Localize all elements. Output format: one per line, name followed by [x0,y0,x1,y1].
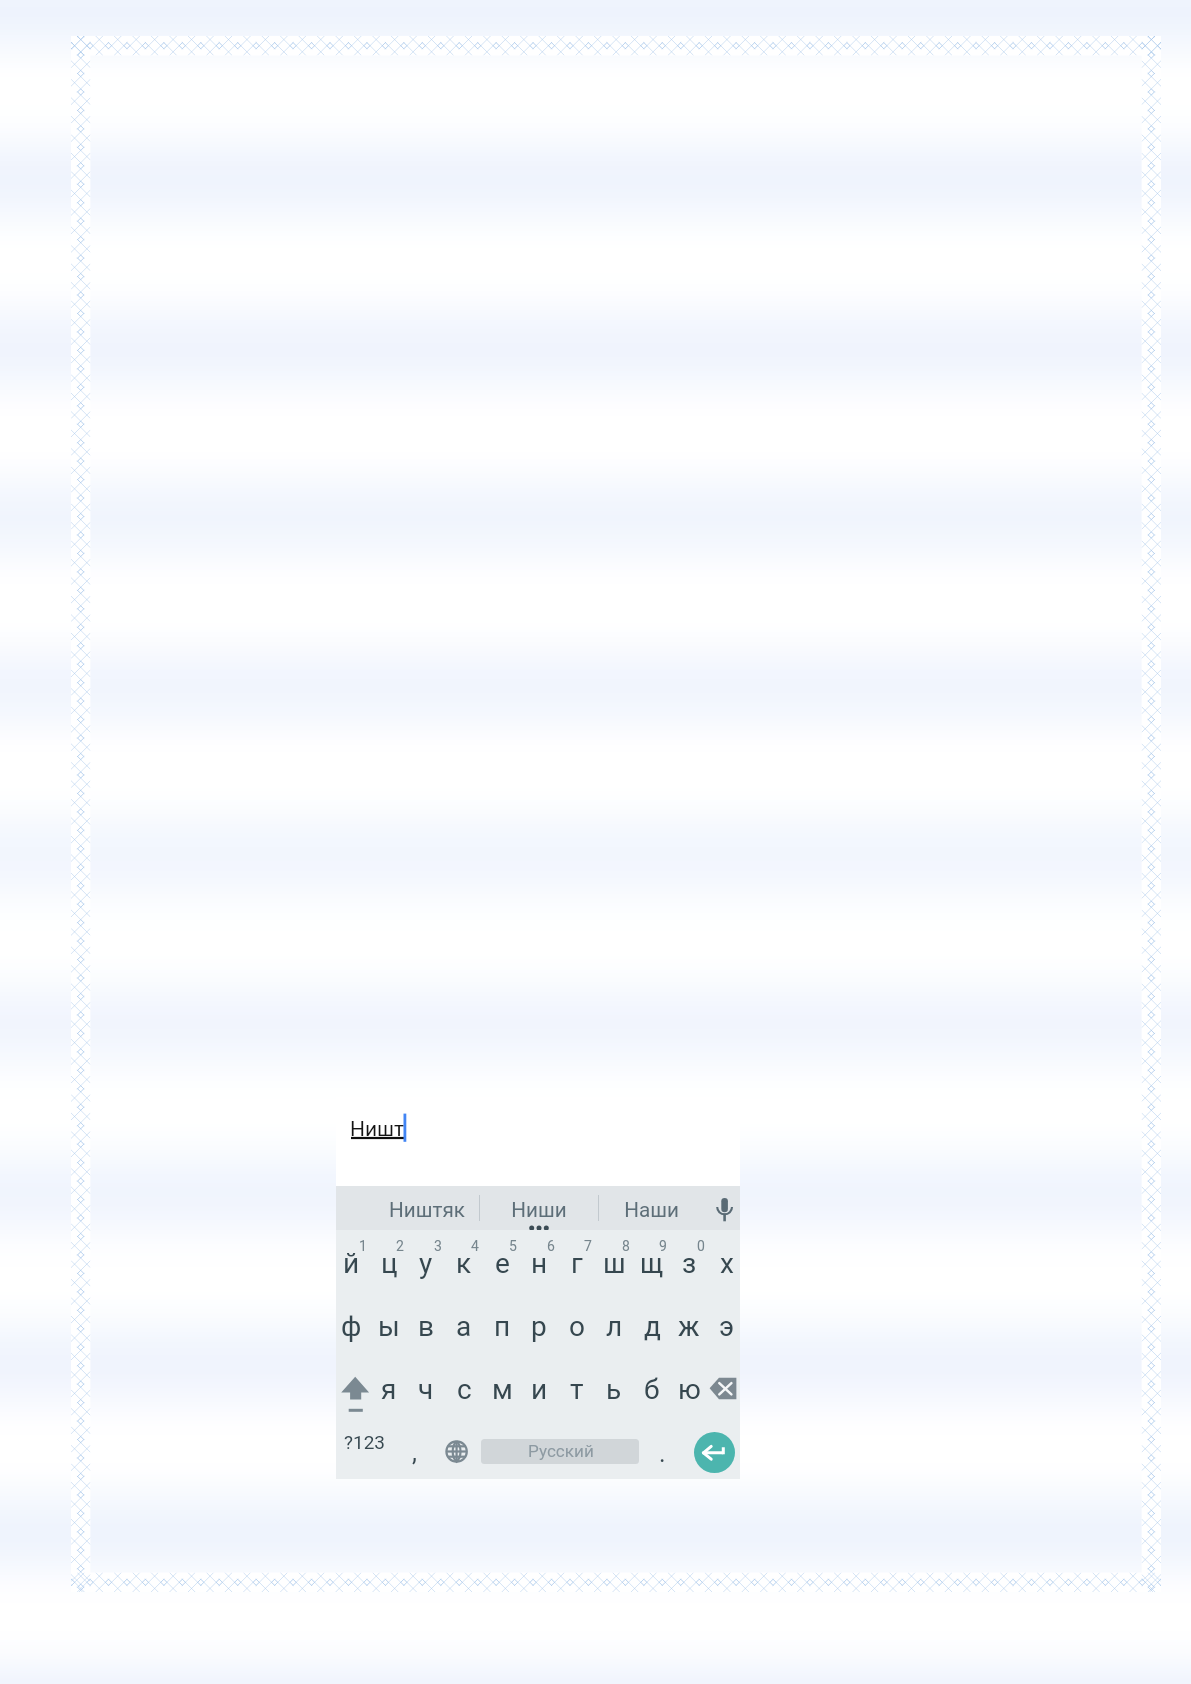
button[interactable]: Ништяк [375,1186,479,1231]
button[interactable]: Enter [694,1432,735,1473]
button[interactable]: Change language [444,1438,470,1464]
staticText: и [531,1373,548,1406]
button[interactable] [708,1290,746,1352]
staticText: ш [603,1247,626,1280]
button[interactable] [708,1227,746,1289]
button[interactable] [346,1402,384,1464]
button[interactable] [520,1290,558,1352]
staticText: 0 [697,1238,705,1254]
button[interactable]: Backspace [708,1376,738,1401]
staticText: Русский [528,1441,594,1461]
staticText: 4 [471,1238,479,1254]
button[interactable] [671,1227,709,1289]
button[interactable] [596,1290,634,1352]
staticText: б [644,1373,660,1406]
staticText: щ [640,1247,664,1280]
staticText: , [412,1438,417,1467]
button[interactable] [408,1227,446,1289]
button[interactable] [333,1290,371,1352]
button[interactable] [633,1290,671,1352]
staticText: ь [606,1373,622,1406]
button[interactable] [419,1205,457,1267]
staticText: о [569,1310,585,1343]
staticText: э [719,1310,735,1343]
staticText: ф [341,1310,362,1343]
button[interactable] [494,1205,532,1267]
button[interactable] [445,1353,483,1415]
button[interactable] [483,1353,521,1415]
button[interactable] [644,1205,682,1267]
button[interactable]: Shift [339,1374,373,1414]
button[interactable] [483,1227,521,1289]
button[interactable] [395,1416,433,1478]
button[interactable] [569,1205,607,1267]
button[interactable] [408,1353,446,1415]
staticText: х [720,1247,734,1280]
staticText: 1 [359,1238,367,1254]
button[interactable] [344,1205,382,1267]
button[interactable] [671,1353,709,1415]
staticText: 7 [584,1238,592,1254]
staticText: з [682,1247,697,1280]
button[interactable]: Ништ [336,1097,740,1186]
staticText: в [418,1310,435,1343]
staticText: ч [418,1373,434,1406]
button[interactable] [445,1227,483,1289]
button[interactable] [532,1205,570,1267]
button[interactable] [520,1227,558,1289]
staticText: а [456,1310,472,1343]
staticText: ю [678,1373,701,1406]
button[interactable] [457,1205,495,1267]
staticText: 5 [509,1238,517,1254]
button[interactable]: Ниши [479,1186,598,1231]
staticText: Ништ [350,1117,405,1142]
button[interactable]: Voice input [708,1192,740,1224]
staticText: Наши [624,1198,679,1222]
staticText: л [606,1310,623,1343]
button[interactable] [370,1290,408,1352]
button[interactable] [596,1227,634,1289]
staticText: с [457,1373,472,1406]
staticText: й [343,1247,360,1280]
button[interactable] [558,1290,596,1352]
staticText: е [495,1247,510,1280]
button[interactable]: Наши [598,1186,705,1231]
staticText: д [644,1310,661,1343]
staticText: ?123 [344,1431,386,1453]
button[interactable] [596,1353,634,1415]
staticText: 8 [622,1238,630,1254]
button[interactable] [408,1290,446,1352]
button[interactable] [483,1290,521,1352]
button[interactable] [633,1353,671,1415]
staticText: м [492,1373,513,1406]
button[interactable] [671,1290,709,1352]
button[interactable] [370,1227,408,1289]
staticText: п [494,1310,511,1343]
staticText: т [570,1373,584,1406]
staticText: 3 [434,1238,442,1254]
staticText: 2 [396,1238,404,1254]
staticText: р [531,1310,547,1343]
staticText: 9 [659,1238,667,1254]
staticText: . [659,1439,666,1468]
button[interactable] [558,1227,596,1289]
button[interactable] [445,1290,483,1352]
staticText: г [571,1247,583,1280]
staticText: ц [381,1247,398,1280]
button[interactable] [370,1353,408,1415]
staticText: Ниши [511,1198,567,1222]
button[interactable] [520,1353,558,1415]
button[interactable]: Русский [481,1439,639,1464]
button[interactable] [633,1227,671,1289]
staticText: н [531,1247,548,1280]
staticText: к [456,1247,472,1280]
button[interactable] [558,1353,596,1415]
staticText: у [419,1247,433,1280]
button[interactable] [333,1227,371,1289]
button[interactable] [381,1205,419,1267]
button[interactable] [682,1205,720,1267]
staticText: ж [678,1310,700,1343]
button[interactable] [607,1205,645,1267]
staticText: Ништяк [389,1198,465,1222]
button[interactable] [643,1416,681,1478]
